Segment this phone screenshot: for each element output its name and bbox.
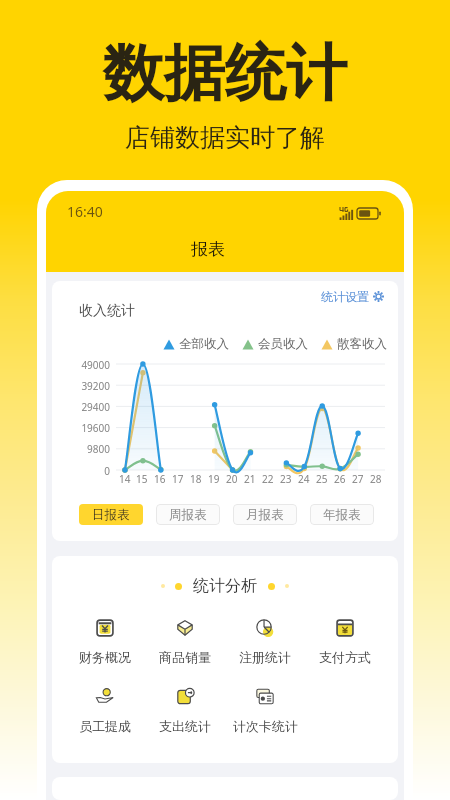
button[interactable]: 周报表 xyxy=(156,504,220,525)
staticText: 商品销量 xyxy=(159,649,211,665)
staticText: 散客收入 xyxy=(337,336,387,352)
button[interactable]: 商品销量 xyxy=(145,616,225,665)
staticText: 19 xyxy=(208,472,220,486)
button[interactable]: 日报表 xyxy=(79,504,143,525)
button[interactable]: 支付方式 xyxy=(305,616,385,665)
staticText: 店铺数据实时了解 xyxy=(125,122,325,153)
staticText: 统计设置 xyxy=(321,289,369,304)
staticText: 21 xyxy=(244,472,256,486)
staticText: 19600 xyxy=(52,421,110,435)
staticText: 39200 xyxy=(52,379,110,393)
staticText: 会员收入 xyxy=(258,336,308,352)
button[interactable]: 财务概况 xyxy=(65,616,145,665)
staticText: 报表 xyxy=(191,239,225,260)
staticText: 全部收入 xyxy=(179,336,229,352)
staticText: 计次卡统计 xyxy=(233,718,298,734)
staticText: 22 xyxy=(262,472,274,486)
staticText: 20 xyxy=(226,472,238,486)
staticText: 0 xyxy=(52,464,110,478)
button[interactable]: 支出统计 xyxy=(145,685,225,734)
staticText: 支出统计 xyxy=(159,718,211,734)
staticText: 支付方式 xyxy=(319,649,371,665)
staticText: 28 xyxy=(370,472,382,486)
staticText: 17 xyxy=(172,472,184,486)
staticText: 收入统计 xyxy=(79,302,135,320)
staticText: 周报表 xyxy=(169,507,207,523)
staticText: 数据统计 xyxy=(103,35,347,112)
staticText: 26 xyxy=(334,472,346,486)
button[interactable]: 统计设置 xyxy=(321,289,384,304)
button[interactable]: 注册统计 xyxy=(225,616,305,665)
staticText: 16:40 xyxy=(67,202,103,221)
staticText: 统计分析 xyxy=(193,576,257,596)
button[interactable]: 计次卡统计 xyxy=(225,685,305,734)
staticText: 27 xyxy=(352,472,364,486)
staticText: 9800 xyxy=(52,442,110,456)
button[interactable]: 员工提成 xyxy=(65,685,145,734)
staticText: 财务概况 xyxy=(79,649,131,665)
button[interactable]: 年报表 xyxy=(310,504,374,525)
button[interactable]: 月报表 xyxy=(233,504,297,525)
staticText: 29400 xyxy=(52,400,110,414)
staticText: 日报表 xyxy=(92,507,130,523)
staticText: 14 xyxy=(119,472,131,486)
staticText: 24 xyxy=(298,472,310,486)
staticText: 15 xyxy=(136,472,148,486)
staticText: 18 xyxy=(190,472,202,486)
staticText: 23 xyxy=(280,472,292,486)
staticText: 员工提成 xyxy=(79,718,131,734)
staticText: 注册统计 xyxy=(239,649,291,665)
staticText: 月报表 xyxy=(246,507,284,523)
staticText: 49000 xyxy=(52,358,110,372)
staticText: 年报表 xyxy=(323,507,361,523)
staticText: 16 xyxy=(154,472,166,486)
staticText: 25 xyxy=(316,472,328,486)
